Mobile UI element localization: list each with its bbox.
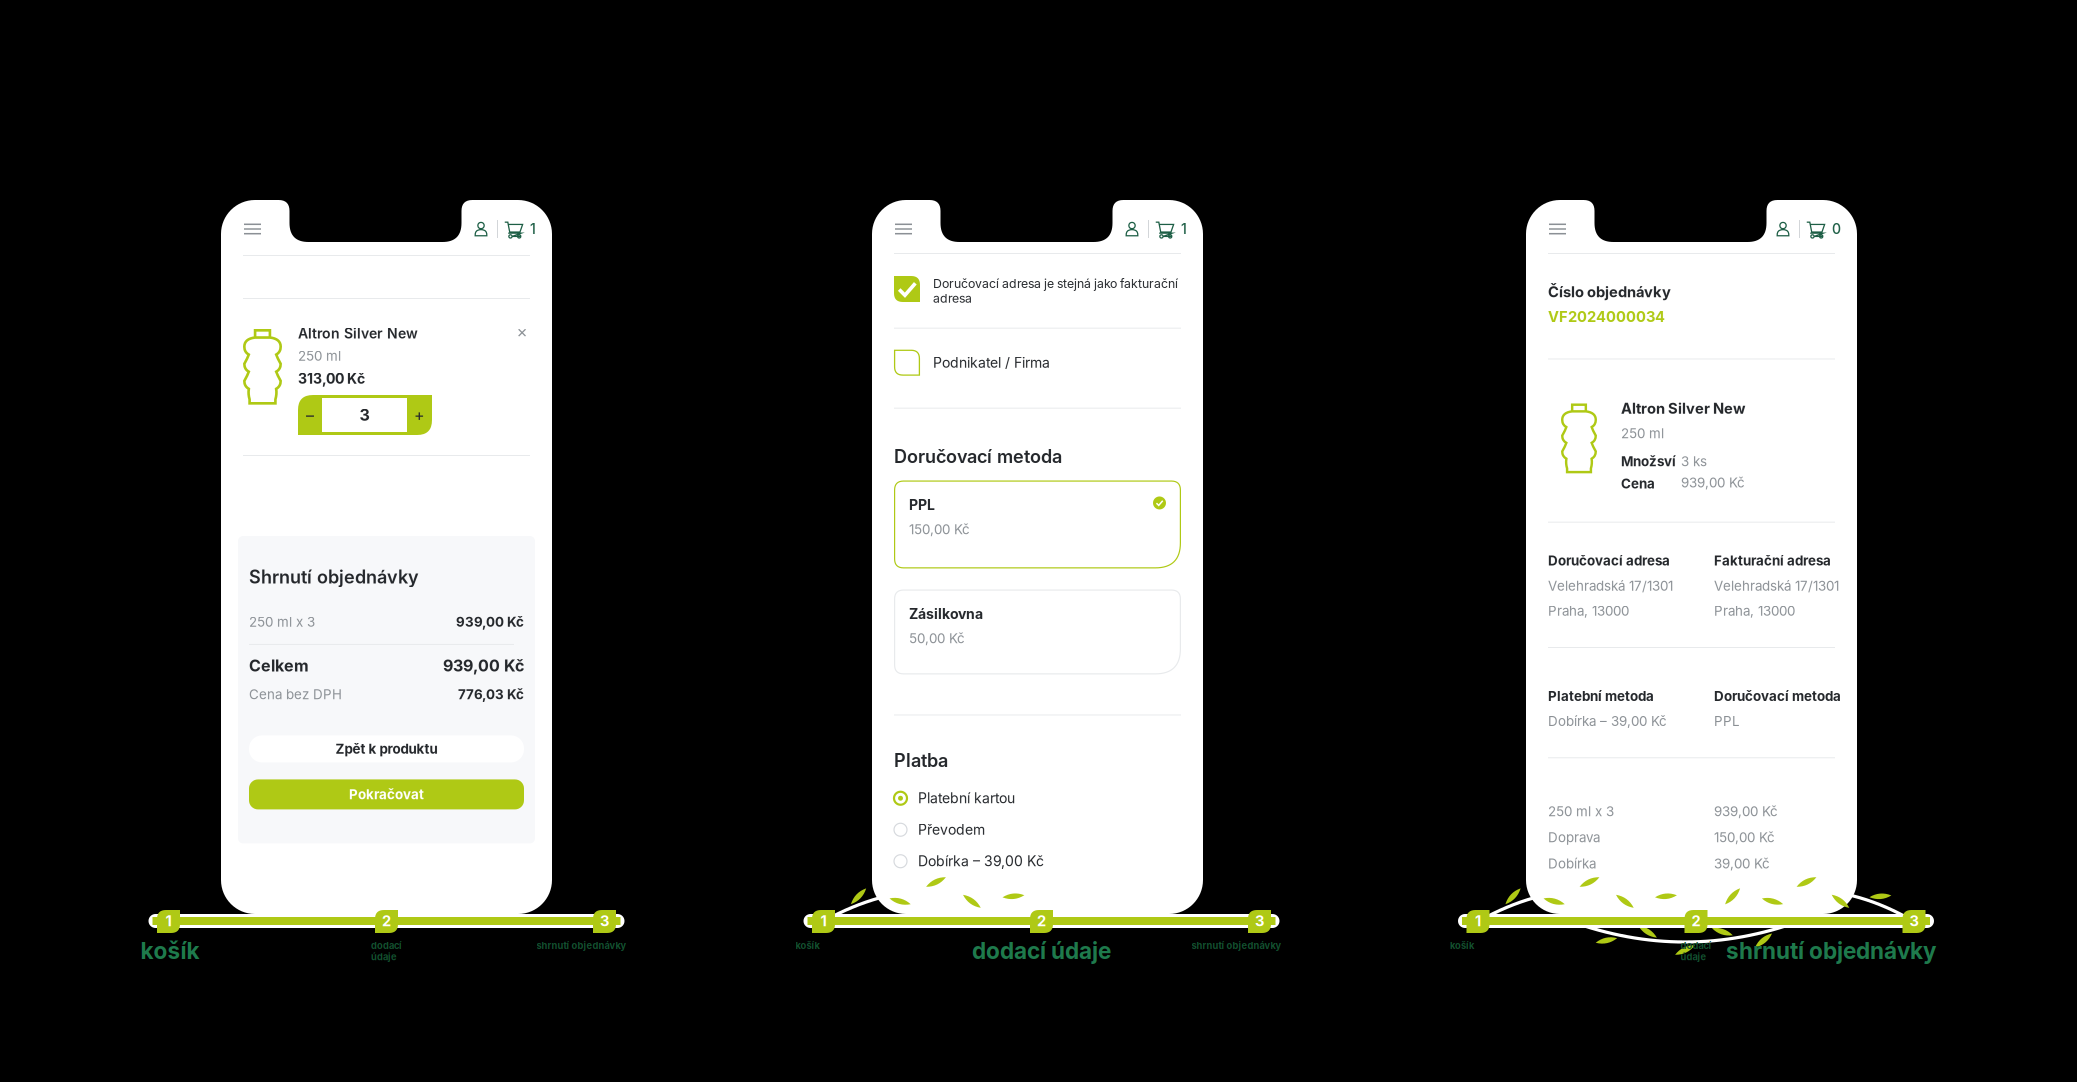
button[interactable]: Menu — [244, 214, 270, 244]
button[interactable]: Account — [1773, 216, 1793, 242]
staticText: – — [306, 405, 314, 425]
staticText: 939,00 Kč — [1681, 474, 1745, 491]
staticText: 150,00 Kč — [909, 521, 970, 537]
button[interactable]: Step 2, dodací údaje — [1684, 910, 1707, 933]
button[interactable]: Cart, 0 items — [1806, 216, 1841, 242]
staticText: 1 — [1475, 912, 1481, 930]
staticText: 250 ml — [1621, 425, 1664, 441]
staticText: Doručovací adresa je stejná jako faktura… — [933, 276, 1178, 306]
staticText: 150,00 Kč — [1714, 829, 1775, 845]
staticText: dodací údaje — [972, 937, 1111, 964]
staticText: Altron Silver New — [1621, 399, 1745, 417]
staticText: + — [414, 405, 425, 425]
staticText: Dobírka – 39,00 Kč — [1548, 713, 1667, 729]
button[interactable]: Step 3, shrnutí objednávky — [1248, 910, 1271, 933]
button[interactable]: Platební kartou — [894, 785, 1181, 811]
staticText: 939,00 Kč — [1714, 803, 1778, 819]
button[interactable]: Step 3, shrnutí objednávky — [1902, 910, 1925, 933]
staticText: Praha, 13000 — [1714, 603, 1795, 619]
staticText: 939,00 Kč — [456, 614, 524, 630]
staticText: dodací údaje — [1680, 940, 1711, 963]
button[interactable]: Pokračovat — [249, 779, 524, 809]
staticText: 2 — [382, 912, 391, 930]
staticText: Dobírka — [1548, 856, 1596, 872]
staticText: Fakturační adresa — [1714, 553, 1831, 569]
staticText: Převodem — [918, 821, 985, 838]
button[interactable]: Cart, 1 items — [504, 216, 536, 242]
button[interactable]: Step 2, dodací údaje — [375, 910, 398, 933]
staticText: Altron Silver New — [298, 325, 418, 342]
button[interactable]: Step 2, dodací údaje — [1030, 910, 1053, 933]
staticText: dodací údaje — [371, 940, 402, 963]
button[interactable]: Dobírka – 39,00 Kč — [894, 848, 1181, 874]
staticText: VF2024000034 — [1548, 308, 1665, 325]
staticText: 50,00 Kč — [909, 630, 965, 646]
button[interactable]: Step 1, košík — [1466, 910, 1489, 933]
staticText: PPL — [1714, 713, 1740, 729]
button[interactable]: Podnikatel / Firma — [872, 329, 1203, 408]
staticText: 39,00 Kč — [1714, 856, 1770, 872]
staticText: Cena bez DPH — [249, 686, 342, 702]
button[interactable]: Account — [1122, 216, 1142, 242]
staticText: shrnutí objednávky — [1726, 937, 1936, 964]
staticText: 939,00 Kč — [443, 656, 524, 675]
staticText: 1 — [820, 912, 826, 930]
button[interactable]: Cart, 1 items — [1155, 216, 1187, 242]
staticText: 3 ks — [1681, 453, 1707, 469]
button[interactable]: Zpět k produktu — [249, 735, 524, 762]
staticText: Shrnutí objednávky — [249, 566, 419, 588]
staticText: Zásilkovna — [909, 605, 983, 622]
button[interactable]: Step 1, košík — [812, 910, 835, 933]
button[interactable]: Account — [471, 216, 491, 242]
staticText: Zpět k produktu — [335, 741, 437, 757]
button[interactable]: Decrease quantity — [298, 395, 322, 435]
staticText: 3 — [1255, 912, 1264, 930]
staticText: Dobírka – 39,00 Kč — [918, 853, 1044, 870]
button[interactable]: Převodem — [894, 816, 1181, 843]
staticText: košík — [795, 940, 819, 951]
staticText: 776,03 Kč — [458, 686, 524, 702]
staticText: Množsví — [1621, 453, 1676, 469]
staticText: Podnikatel / Firma — [933, 354, 1050, 371]
staticText: PPL — [909, 496, 935, 513]
staticText: Platební metoda — [1548, 688, 1654, 704]
staticText: Doručovací adresa — [1548, 553, 1670, 569]
button[interactable]: Step 3, shrnutí objednávky — [593, 910, 616, 933]
staticText: Číslo objednávky — [1548, 283, 1671, 301]
button[interactable]: Menu — [1549, 214, 1575, 244]
staticText: Doprava — [1548, 829, 1600, 845]
staticText: košík — [140, 937, 199, 964]
staticText: ✕ — [516, 325, 527, 341]
staticText: Celkem — [249, 656, 309, 675]
staticText: Praha, 13000 — [1548, 603, 1629, 619]
staticText: Pokračovat — [349, 786, 424, 802]
staticText: 313,00 Kč — [298, 370, 365, 387]
staticText: Velehradská 17/1301 — [1714, 578, 1839, 594]
button[interactable]: Step 1, košík — [157, 910, 180, 933]
staticText: 2 — [1037, 912, 1046, 930]
staticText: 250 ml x 3 — [249, 614, 315, 630]
staticText: 0 — [1832, 220, 1841, 237]
staticText: 250 ml — [298, 348, 341, 364]
staticText: 250 ml x 3 — [1548, 803, 1614, 819]
staticText: 1 — [165, 912, 171, 930]
button[interactable]: PPL — [894, 480, 1181, 568]
button[interactable]: Zásilkovna — [894, 589, 1181, 674]
staticText: 1 — [1181, 220, 1187, 237]
button[interactable]: Remove item — [514, 325, 530, 341]
staticText: Platební kartou — [918, 790, 1015, 807]
staticText: Cena — [1621, 475, 1655, 492]
staticText: 3 — [1909, 912, 1918, 930]
staticText: Doručovací metoda — [894, 446, 1062, 467]
staticText: 1 — [530, 220, 536, 237]
staticText: Velehradská 17/1301 — [1548, 578, 1673, 594]
staticText: shrnutí objednávky — [1191, 940, 1281, 951]
button[interactable]: Increase quantity — [407, 395, 432, 435]
staticText: Platba — [894, 749, 948, 771]
button[interactable]: Doručovací adresa je stejná jako faktura… — [872, 254, 1203, 328]
button[interactable]: Menu — [895, 214, 921, 244]
staticText: Doručovací metoda — [1714, 688, 1841, 704]
staticText: 2 — [1691, 912, 1700, 930]
staticText: košík — [1450, 940, 1474, 951]
staticText: shrnutí objednávky — [536, 940, 626, 951]
